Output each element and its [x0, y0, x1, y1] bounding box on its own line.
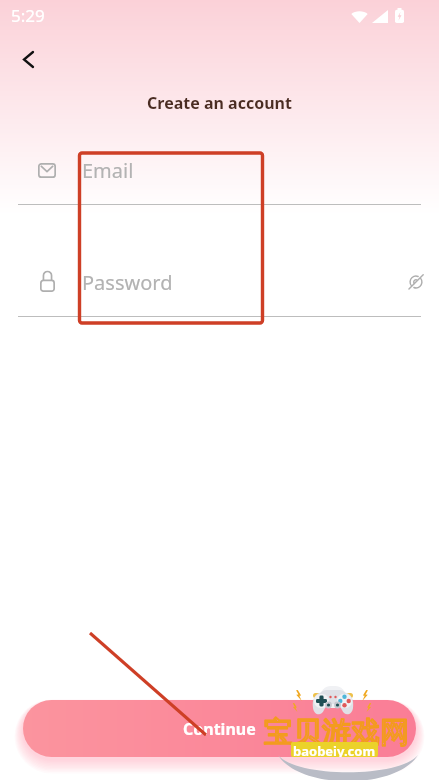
staticText: Email: [82, 157, 421, 184]
staticText: Continue: [183, 718, 256, 740]
button[interactable]: Continue: [23, 700, 416, 757]
button[interactable]: Back: [8, 39, 48, 79]
staticText: Password: [82, 269, 405, 296]
staticText: Create an account: [147, 92, 292, 114]
staticText: baobeiy.com: [293, 742, 376, 757]
staticText: 宝贝游戏网: [264, 714, 409, 751]
button[interactable]: Password: [18, 254, 421, 310]
button[interactable]: Email: [18, 142, 421, 198]
staticText: 5:29: [11, 4, 45, 27]
button[interactable]: Show password: [408, 274, 424, 290]
